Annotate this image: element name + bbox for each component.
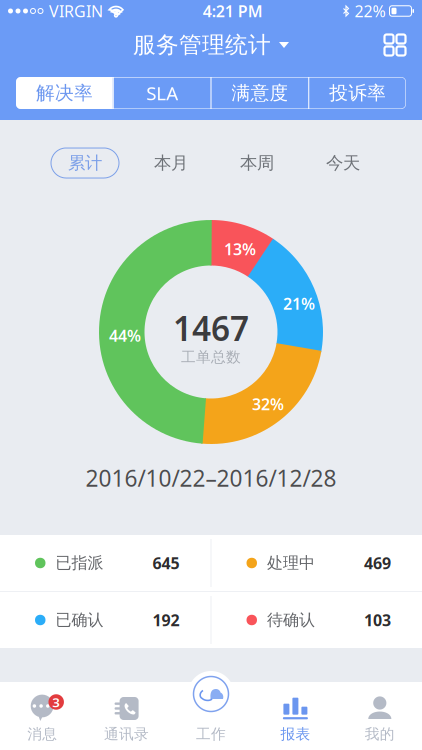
staticText: 103: [364, 609, 391, 631]
staticText: 32%: [252, 393, 284, 415]
button[interactable]: 待确认: [211, 592, 422, 648]
staticText: 21%: [283, 293, 315, 314]
button[interactable]: 处理中: [211, 535, 422, 591]
staticText: 1467: [173, 306, 249, 350]
button[interactable]: 报表: [253, 689, 338, 743]
button[interactable]: 今天: [309, 148, 377, 178]
staticText: SLA: [146, 81, 178, 105]
staticText: 通讯录: [104, 725, 149, 743]
button[interactable]: 已确认: [0, 592, 210, 648]
button[interactable]: 我的: [338, 689, 422, 743]
staticText: 消息: [27, 725, 57, 743]
button[interactable]: 工作: [188, 671, 234, 717]
staticText: 本周: [240, 152, 274, 174]
button[interactable]: 服务管理统计: [133, 31, 289, 59]
button[interactable]: 满意度: [211, 77, 308, 109]
staticText: 投诉率: [329, 81, 386, 104]
button[interactable]: 已指派: [0, 535, 210, 591]
button[interactable]: 本周: [223, 148, 291, 178]
staticText: 469: [364, 552, 391, 574]
button[interactable]: 工作: [169, 689, 253, 743]
staticText: 处理中: [267, 553, 315, 573]
staticText: 2016/10/22–2016/12/28: [85, 463, 336, 493]
button[interactable]: 累计: [51, 148, 119, 178]
staticText: 13%: [224, 238, 256, 260]
staticText: 报表: [280, 725, 310, 743]
button[interactable]: 3: [0, 689, 84, 743]
button[interactable]: SLA: [114, 77, 211, 109]
button[interactable]: 本月: [137, 148, 205, 178]
staticText: 我的: [365, 725, 395, 743]
staticText: 22%: [354, 0, 385, 22]
staticText: 已指派: [55, 553, 103, 573]
button[interactable]: 通讯录: [84, 689, 169, 743]
staticText: 满意度: [231, 81, 288, 104]
staticText: 累计: [68, 152, 102, 174]
staticText: 解决率: [36, 81, 93, 104]
staticText: 645: [152, 552, 179, 574]
staticText: 待确认: [267, 610, 315, 630]
staticText: 工单总数: [181, 348, 241, 366]
button[interactable]: 投诉率: [309, 77, 406, 109]
staticText: 服务管理统计: [133, 31, 271, 59]
button[interactable]: Apps: [376, 26, 414, 64]
staticText: 192: [152, 609, 179, 631]
button[interactable]: 解决率: [16, 77, 113, 109]
staticText: 今天: [326, 152, 360, 174]
staticText: 已确认: [55, 610, 103, 630]
staticText: 工作: [196, 725, 226, 743]
staticText: VIRGIN: [49, 0, 103, 22]
staticText: 3: [52, 693, 60, 711]
staticText: 44%: [109, 325, 141, 346]
staticText: 本月: [154, 152, 188, 174]
staticText: 4:21 PM: [203, 0, 263, 22]
